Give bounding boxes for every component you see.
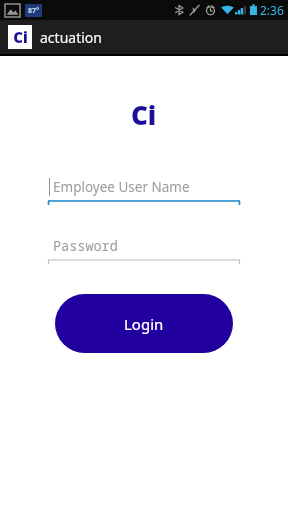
button[interactable]: Employee User Name: [48, 174, 240, 205]
button[interactable]: Login: [55, 294, 233, 353]
staticText: 87°: [28, 6, 39, 16]
staticText: Employee User Name: [53, 178, 190, 196]
button[interactable]: Password: [48, 233, 240, 264]
staticText: 2:36: [260, 2, 284, 18]
staticText: Ci: [13, 27, 28, 47]
staticText: Password: [53, 237, 118, 255]
staticText: Login: [124, 314, 164, 334]
staticText: Ci: [131, 97, 157, 132]
staticText: actuation: [40, 28, 102, 47]
